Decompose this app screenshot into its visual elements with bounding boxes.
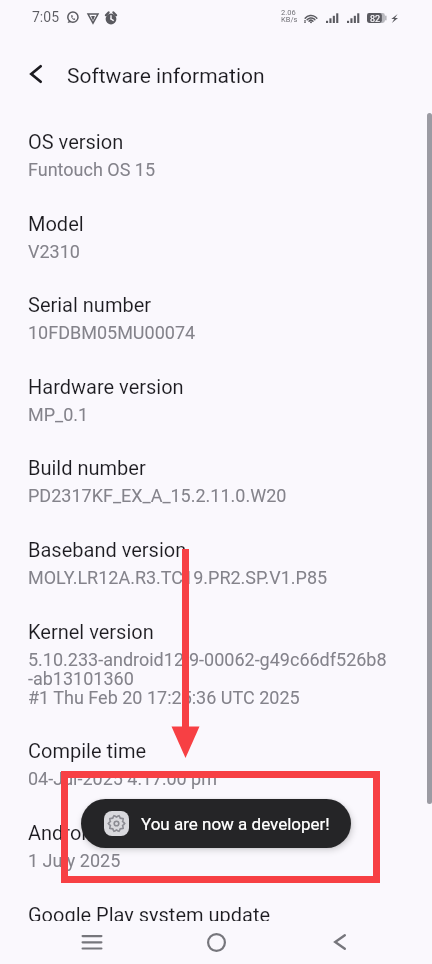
- button[interactable]: OS version: [0, 124, 432, 189]
- staticText: Model: [28, 212, 84, 235]
- button[interactable]: Hardware version: [0, 369, 432, 434]
- staticText: 7:05: [32, 9, 59, 25]
- staticText: Hardware version: [28, 375, 184, 398]
- button[interactable]: Serial number: [0, 287, 432, 352]
- staticText: 04-Jul-2025 4:17:00 pm: [28, 768, 217, 789]
- staticText: Serial number: [28, 293, 152, 316]
- staticText: 2.06: [281, 8, 296, 17]
- button[interactable]: Home: [192, 920, 241, 964]
- staticText: KB/s: [281, 15, 298, 24]
- button[interactable]: Kernel version: [0, 614, 432, 717]
- staticText: -ab13101360: [28, 668, 134, 689]
- button[interactable]: Build number: [0, 450, 432, 515]
- staticText: Funtouch OS 15: [28, 159, 156, 180]
- button[interactable]: Recent apps: [67, 920, 116, 964]
- button[interactable]: Google Play system update: [0, 897, 432, 921]
- staticText: 82: [370, 14, 381, 25]
- staticText: You are now a developer!: [141, 814, 330, 834]
- staticText: Software information: [67, 64, 265, 89]
- staticText: MOLY.LR12A.R3.TC19.PR2.SP.V1.P85: [28, 567, 328, 588]
- staticText: Kernel version: [28, 620, 154, 643]
- staticText: 1 July 2025: [28, 850, 121, 871]
- staticText: 5.10.233-android12-9-00062-g49c66df526b8: [28, 649, 387, 670]
- staticText: Android security update: [28, 821, 240, 844]
- button[interactable]: Baseband version: [0, 532, 432, 597]
- staticText: PD2317KF_EX_A_15.2.11.0.W20: [28, 485, 287, 506]
- staticText: Baseband version: [28, 538, 187, 561]
- staticText: MP_0.1: [28, 404, 89, 425]
- staticText: OS version: [28, 130, 124, 153]
- staticText: #1 Thu Feb 20 17:25:36 UTC 2025: [28, 687, 300, 708]
- staticText: V2310: [28, 241, 80, 262]
- staticText: Build number: [28, 456, 146, 479]
- button[interactable]: Model: [0, 206, 432, 271]
- staticText: Google Play system update: [28, 903, 271, 921]
- button[interactable]: Back: [315, 920, 364, 964]
- button[interactable]: Back: [19, 57, 52, 90]
- staticText: 10FDBM05MU00074: [28, 322, 196, 343]
- button[interactable]: Android security update: [0, 815, 432, 880]
- staticText: Compile time: [28, 739, 147, 762]
- button[interactable]: Compile time: [0, 733, 432, 798]
- button[interactable]: You are now a developer!: [81, 799, 351, 848]
